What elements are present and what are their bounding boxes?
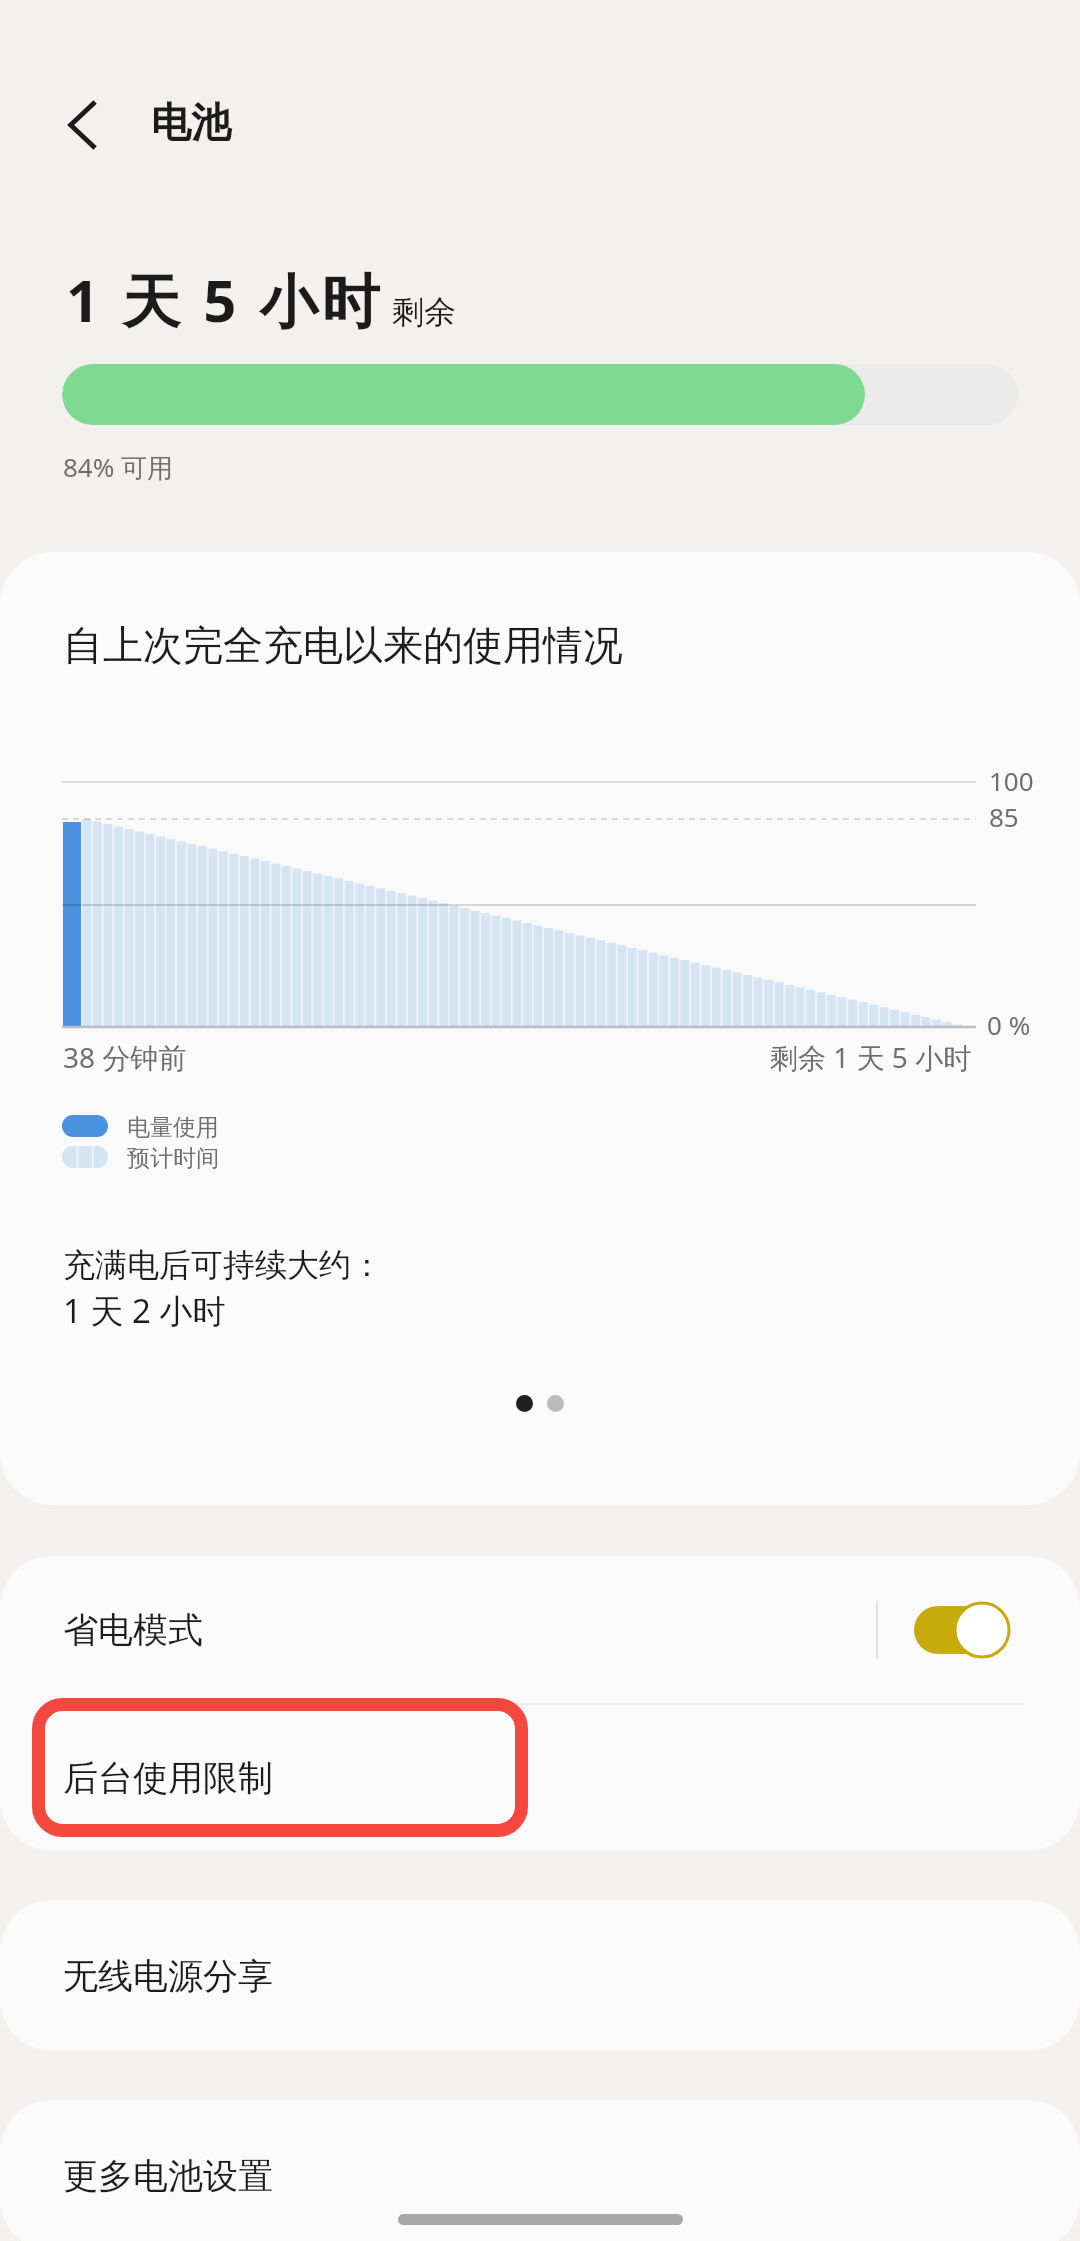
button[interactable]: 更多电池设置 bbox=[0, 2100, 1080, 2241]
button[interactable]: 省电模式 bbox=[0, 1556, 1080, 1703]
staticText: 84% 可用 bbox=[63, 449, 174, 485]
staticText: 充满电后可持续大约： bbox=[63, 1245, 383, 1285]
staticText: 预计时间 bbox=[127, 1144, 219, 1173]
button[interactable]: Back bbox=[32, 77, 128, 173]
staticText: 1 天 2 小时 bbox=[63, 1288, 226, 1333]
staticText: 电池 bbox=[151, 97, 231, 147]
staticText: 1 天 5 小时 bbox=[66, 260, 384, 339]
staticText: 更多电池设置 bbox=[63, 2154, 273, 2198]
staticText: 100 bbox=[989, 763, 1034, 798]
button[interactable]: 后台使用限制 bbox=[0, 1704, 1080, 1851]
staticText: 电量使用 bbox=[127, 1113, 219, 1142]
staticText: 自上次完全充电以来的使用情况 bbox=[63, 620, 623, 670]
staticText: 省电模式 bbox=[63, 1608, 203, 1652]
button[interactable]: 无线电源分享 bbox=[0, 1900, 1080, 2051]
staticText: 剩余 1 天 5 小时 bbox=[770, 1038, 972, 1076]
staticText: 剩余 bbox=[392, 292, 456, 332]
button[interactable]: Power saving mode toggle bbox=[914, 1600, 1010, 1660]
staticText: 后台使用限制 bbox=[63, 1756, 273, 1800]
staticText: 85 bbox=[989, 799, 1019, 834]
staticText: 38 分钟前 bbox=[63, 1038, 187, 1076]
staticText: 0 % bbox=[987, 1007, 1031, 1042]
staticText: 无线电源分享 bbox=[63, 1954, 273, 1998]
